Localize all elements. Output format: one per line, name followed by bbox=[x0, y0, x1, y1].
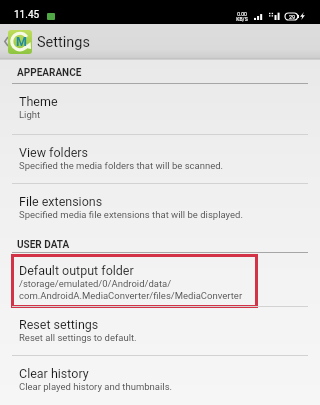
staticText: Theme bbox=[19, 94, 58, 109]
staticText: /storage/emulated/0/Android/data/ bbox=[19, 278, 172, 289]
staticText: Reset settings bbox=[19, 317, 99, 332]
staticText: Default output folder bbox=[19, 263, 134, 278]
staticText: View folders bbox=[19, 145, 89, 160]
button[interactable]: Theme bbox=[0, 83, 320, 134]
button[interactable]: View folders bbox=[0, 134, 320, 183]
staticText: Specified the media folders that will be… bbox=[19, 160, 224, 171]
button[interactable]: Clear history bbox=[0, 355, 320, 404]
button[interactable]: Reset settings bbox=[0, 306, 320, 355]
staticText: Reset all settings to default. bbox=[19, 332, 137, 343]
staticText: Settings bbox=[37, 34, 90, 51]
staticText: 0.00 KB/S bbox=[236, 11, 248, 23]
staticText: M bbox=[16, 34, 27, 49]
staticText: File extensions bbox=[19, 194, 103, 209]
staticText: Clear played history and thumbnails. bbox=[19, 381, 173, 392]
button[interactable]: File extensions bbox=[0, 183, 320, 230]
staticText: 29 bbox=[289, 14, 296, 20]
staticText: APPEARANCE bbox=[17, 67, 82, 79]
staticText: com.AndroidA.MediaConverter/files/MediaC… bbox=[19, 290, 243, 301]
button[interactable]: Navigate up bbox=[1, 24, 10, 59]
staticText: USER DATA bbox=[17, 239, 70, 251]
button[interactable]: Default output folder bbox=[0, 252, 320, 306]
staticText: Clear history bbox=[19, 366, 89, 381]
staticText: Specified media file extensions that wil… bbox=[19, 209, 243, 220]
staticText: Light bbox=[19, 109, 41, 120]
staticText: 11.45 bbox=[14, 9, 40, 21]
